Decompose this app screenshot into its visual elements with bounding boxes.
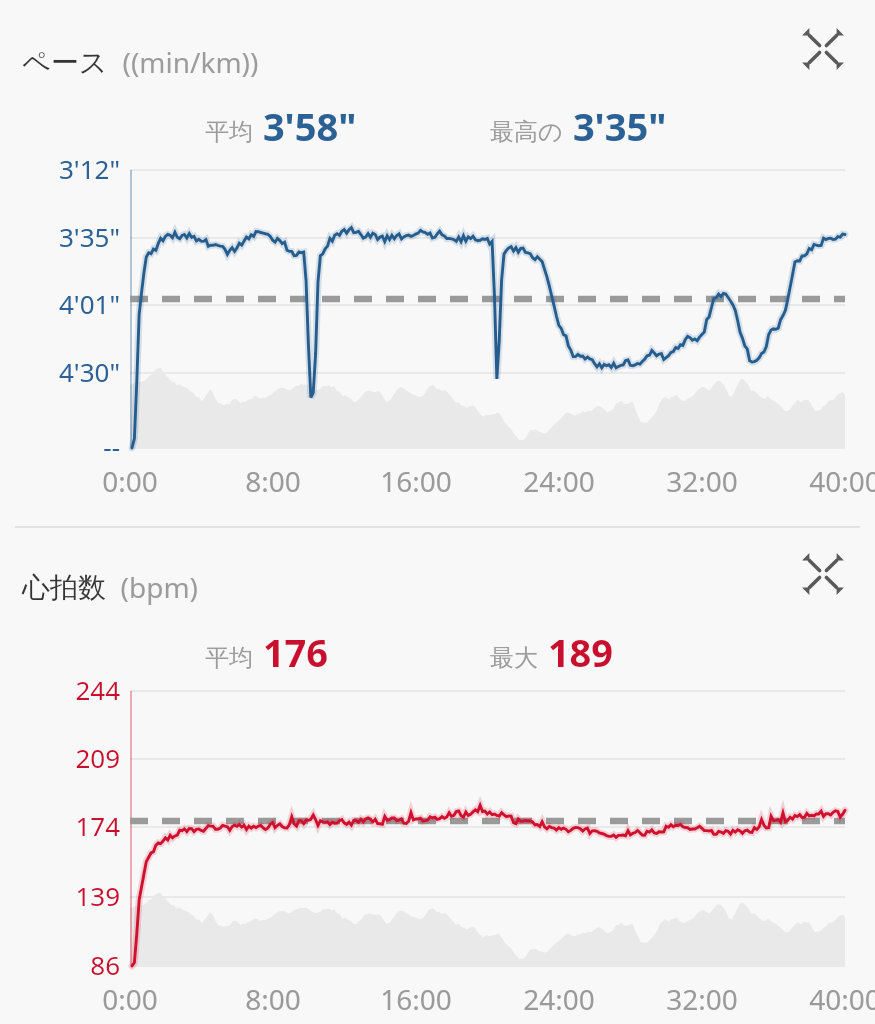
staticText: 最大	[490, 643, 538, 673]
staticText: 平均	[205, 643, 253, 673]
staticText: 3'35"	[563, 100, 667, 152]
staticText: 24:00	[499, 462, 619, 502]
staticText: 16:00	[356, 462, 476, 502]
staticText: 最高の	[490, 117, 563, 147]
button[interactable]: ペースグラフを拡大	[801, 27, 845, 71]
staticText: 平均	[205, 117, 253, 147]
staticText: 244	[12, 672, 120, 710]
staticText: 3'12"	[12, 151, 120, 189]
staticText: 176	[253, 626, 329, 678]
staticText: 3'35"	[12, 219, 120, 257]
staticText: 40:00	[785, 980, 875, 1020]
staticText: ペース	[22, 45, 108, 80]
staticText: 32:00	[642, 462, 762, 502]
staticText: 4'30"	[12, 354, 120, 392]
staticText: 4'01"	[12, 286, 120, 324]
staticText: 40:00	[785, 462, 875, 502]
staticText: 0:00	[70, 980, 190, 1020]
staticText: 86	[12, 947, 120, 985]
staticText: 心拍数	[22, 570, 106, 605]
staticText: 139	[12, 878, 120, 916]
staticText: 8:00	[213, 462, 333, 502]
staticText: 8:00	[213, 980, 333, 1020]
staticText: 189	[538, 626, 614, 678]
staticText: (bpm)	[106, 568, 198, 606]
staticText: 174	[12, 808, 120, 846]
staticText: 209	[12, 740, 120, 778]
staticText: --	[12, 429, 120, 467]
staticText: ((min/km))	[108, 43, 259, 81]
staticText: 24:00	[499, 980, 619, 1020]
staticText: 3'58"	[253, 100, 357, 152]
staticText: 16:00	[356, 980, 476, 1020]
staticText: 0:00	[70, 462, 190, 502]
staticText: 32:00	[642, 980, 762, 1020]
button[interactable]: 心拍数グラフを拡大	[801, 552, 845, 596]
